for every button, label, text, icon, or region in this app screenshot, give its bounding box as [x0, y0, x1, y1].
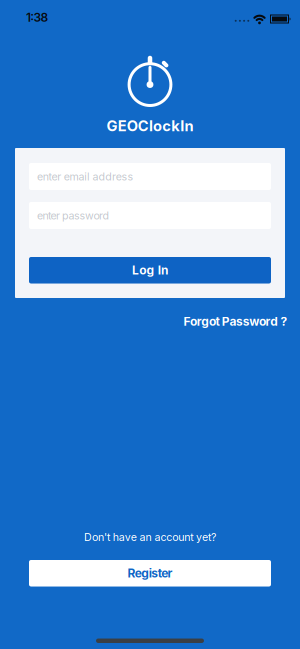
button[interactable]: enter password [29, 202, 271, 229]
button[interactable]: Register [29, 560, 271, 586]
button[interactable]: Forgot Password ? [183, 314, 287, 329]
button[interactable]: Log In [29, 257, 271, 283]
staticText: Don't have an account yet? [84, 531, 216, 543]
staticText: enter email address [37, 170, 133, 183]
staticText: GEOClockIn [107, 117, 193, 135]
staticText: enter password [37, 209, 109, 222]
staticText: Register [127, 566, 173, 580]
staticText: 1:38 [26, 10, 49, 25]
staticText: Forgot Password ? [183, 314, 287, 329]
staticText: Log In [132, 263, 168, 277]
button[interactable]: enter email address [29, 163, 271, 190]
